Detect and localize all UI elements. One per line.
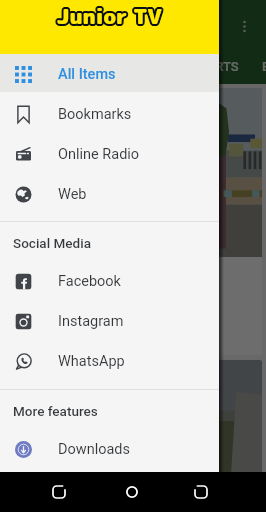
staticText: Junior TV <box>58 1 163 30</box>
button[interactable]: Bookmarks <box>0 94 219 134</box>
staticText: Junior TV <box>56 1 161 30</box>
staticText: Junior TV <box>57 2 162 31</box>
staticText: Junior TV <box>58 3 163 32</box>
staticText: Junior TV <box>57 2 162 31</box>
button[interactable]: Back <box>41 474 77 510</box>
staticText: Junior TV <box>57 2 162 31</box>
staticText: WhatsApp <box>58 353 125 370</box>
button[interactable]: Facebook <box>0 261 219 301</box>
staticText: All Items <box>58 66 116 83</box>
button[interactable]: Home <box>114 474 150 510</box>
staticText: Downloads <box>58 441 131 458</box>
staticText: Social Media <box>13 235 91 251</box>
staticText: Junior TV <box>57 0 162 29</box>
staticText: Junior TV <box>59 0 164 29</box>
staticText: Bookmarks <box>58 106 132 123</box>
button[interactable]: All Items <box>0 54 219 94</box>
staticText: Junior TV <box>59 2 164 31</box>
staticText: SPORTS <box>190 59 239 74</box>
staticText: Junior TV <box>55 0 160 29</box>
button[interactable]: Instagram <box>0 301 219 341</box>
staticText: More features <box>13 403 98 419</box>
staticText: Junior TV <box>56 0 161 28</box>
staticText: Instagram <box>58 313 124 330</box>
staticText: Junior TV <box>57 0 162 29</box>
staticText: Junior TV <box>58 1 163 30</box>
staticText: Junior TV <box>56 1 161 30</box>
staticText: Junior TV <box>57 0 162 28</box>
staticText: Facebook <box>58 273 121 290</box>
staticText: Bomba zer Kanada Bil 7 <box>12 266 87 317</box>
staticText: Junior TV <box>57 0 162 29</box>
staticText: Junior TV <box>56 3 161 32</box>
button[interactable]: Web <box>0 174 219 214</box>
staticText: Junior TV <box>55 1 160 30</box>
button[interactable]: Downloads <box>0 429 219 469</box>
button[interactable]: More options <box>222 4 266 48</box>
staticText: Junior TV <box>57 1 162 30</box>
staticText: Junior TV <box>59 1 164 30</box>
staticText: ENTERTAINMENT <box>262 59 266 74</box>
staticText: Junior TV <box>58 1 163 30</box>
button[interactable]: WhatsApp <box>0 341 219 381</box>
button[interactable]: Recents <box>183 474 219 510</box>
staticText: Web <box>58 186 87 203</box>
staticText: Online Radio <box>58 146 140 163</box>
staticText: Junior TV <box>57 3 162 32</box>
staticText: 15 min. ago <box>12 325 73 340</box>
staticText: Junior TV <box>58 0 163 28</box>
button[interactable]: Online Radio <box>0 134 219 174</box>
staticText: Junior TV <box>55 2 160 31</box>
staticText: Junior TV <box>56 1 161 30</box>
